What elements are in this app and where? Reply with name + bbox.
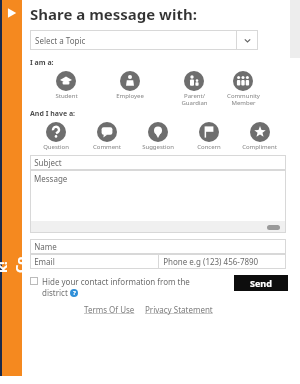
button[interactable]: Name bbox=[30, 239, 286, 254]
staticText: Privacy Statement bbox=[145, 304, 213, 315]
staticText: Suggestion bbox=[142, 143, 174, 151]
staticText: Phone e.g (123) 456-7890 bbox=[159, 256, 259, 267]
staticText: Subject bbox=[30, 157, 62, 168]
button[interactable]: Parent/ Guardian bbox=[162, 71, 226, 107]
button[interactable]: Student bbox=[34, 71, 98, 100]
staticText: ? bbox=[73, 289, 76, 297]
staticText: Share a message with: bbox=[30, 4, 197, 24]
staticText: Message bbox=[34, 173, 68, 184]
button[interactable]: Message bbox=[30, 170, 286, 233]
staticText: Hide your contact information from the bbox=[42, 276, 190, 287]
staticText: Let's Talk! Contact Us! bbox=[0, 251, 83, 273]
button[interactable]: Employee bbox=[98, 71, 162, 100]
button[interactable]: Terms Of Use bbox=[84, 304, 135, 315]
staticText: Compliment bbox=[242, 143, 277, 151]
button[interactable]: Select a Topic bbox=[30, 30, 258, 50]
button[interactable]: Email bbox=[30, 254, 158, 269]
button[interactable]: Community Member bbox=[226, 71, 260, 107]
staticText: Comment bbox=[93, 143, 121, 151]
button[interactable]: Let's Talk! Contact Us! bbox=[0, 0, 22, 376]
staticText: Parent/ Guardian bbox=[181, 92, 208, 107]
staticText: Concern bbox=[197, 143, 221, 151]
button[interactable]: Phone e.g (123) 456-7890 bbox=[159, 254, 286, 269]
staticText: Terms Of Use bbox=[84, 304, 135, 315]
staticText: Student bbox=[55, 92, 78, 100]
staticText: Name bbox=[30, 241, 57, 252]
staticText: And I have a: bbox=[30, 109, 76, 119]
staticText: Email bbox=[30, 256, 55, 267]
button[interactable]: Comment bbox=[81, 122, 132, 151]
button[interactable]: Suggestion bbox=[132, 122, 183, 151]
staticText: Community Member bbox=[227, 92, 260, 107]
button[interactable]: Concern bbox=[183, 122, 234, 151]
button[interactable]: Question bbox=[30, 122, 81, 151]
button[interactable]: Hide your contact information from the bbox=[30, 276, 218, 298]
button[interactable]: Privacy Statement bbox=[145, 304, 213, 315]
button[interactable]: Compliment bbox=[234, 122, 285, 151]
staticText: I am a: bbox=[30, 58, 54, 68]
staticText: Select a Topic bbox=[35, 35, 86, 46]
staticText: district bbox=[42, 287, 70, 298]
staticText: Employee bbox=[116, 92, 144, 100]
staticText: Question bbox=[43, 143, 69, 151]
button[interactable]: Subject bbox=[30, 155, 286, 170]
staticText: Send bbox=[250, 277, 272, 289]
button[interactable]: Send bbox=[234, 275, 288, 291]
